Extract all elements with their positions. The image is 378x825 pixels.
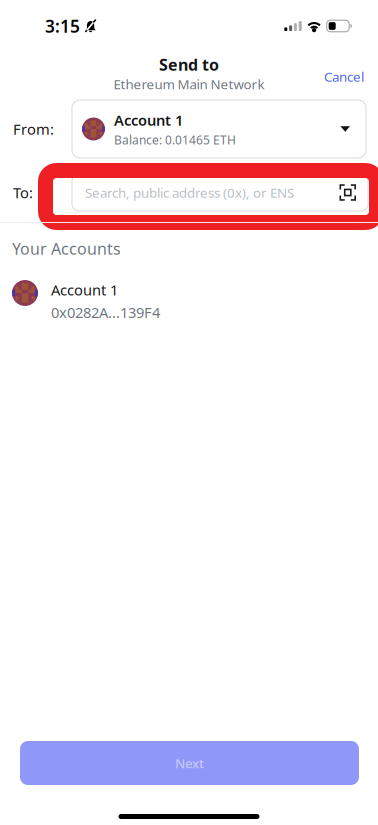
staticText: 0x0282A...139F4 (51, 302, 160, 322)
staticText: Cancel (324, 68, 364, 85)
staticText: Next (175, 754, 204, 772)
staticText: Account 1 (51, 280, 118, 299)
button[interactable]: Cancel (310, 48, 378, 91)
staticText: Ethereum Main Network (113, 75, 264, 93)
staticText: From: (13, 119, 54, 139)
staticText: Send to (159, 54, 219, 75)
button[interactable]: Next (20, 741, 359, 785)
button[interactable]: Account 1 (72, 100, 366, 158)
button[interactable]: Scan a QR code (339, 184, 356, 201)
staticText: 3:15 (45, 14, 80, 37)
button[interactable]: Account 1 (0, 274, 378, 324)
staticText: Your Accounts (12, 238, 121, 259)
staticText: Account 1 (114, 110, 183, 130)
staticText: Search, public address (0x), or ENS (85, 184, 294, 201)
staticText: Balance: 0.01465 ETH (114, 132, 236, 148)
staticText: To: (13, 183, 33, 202)
